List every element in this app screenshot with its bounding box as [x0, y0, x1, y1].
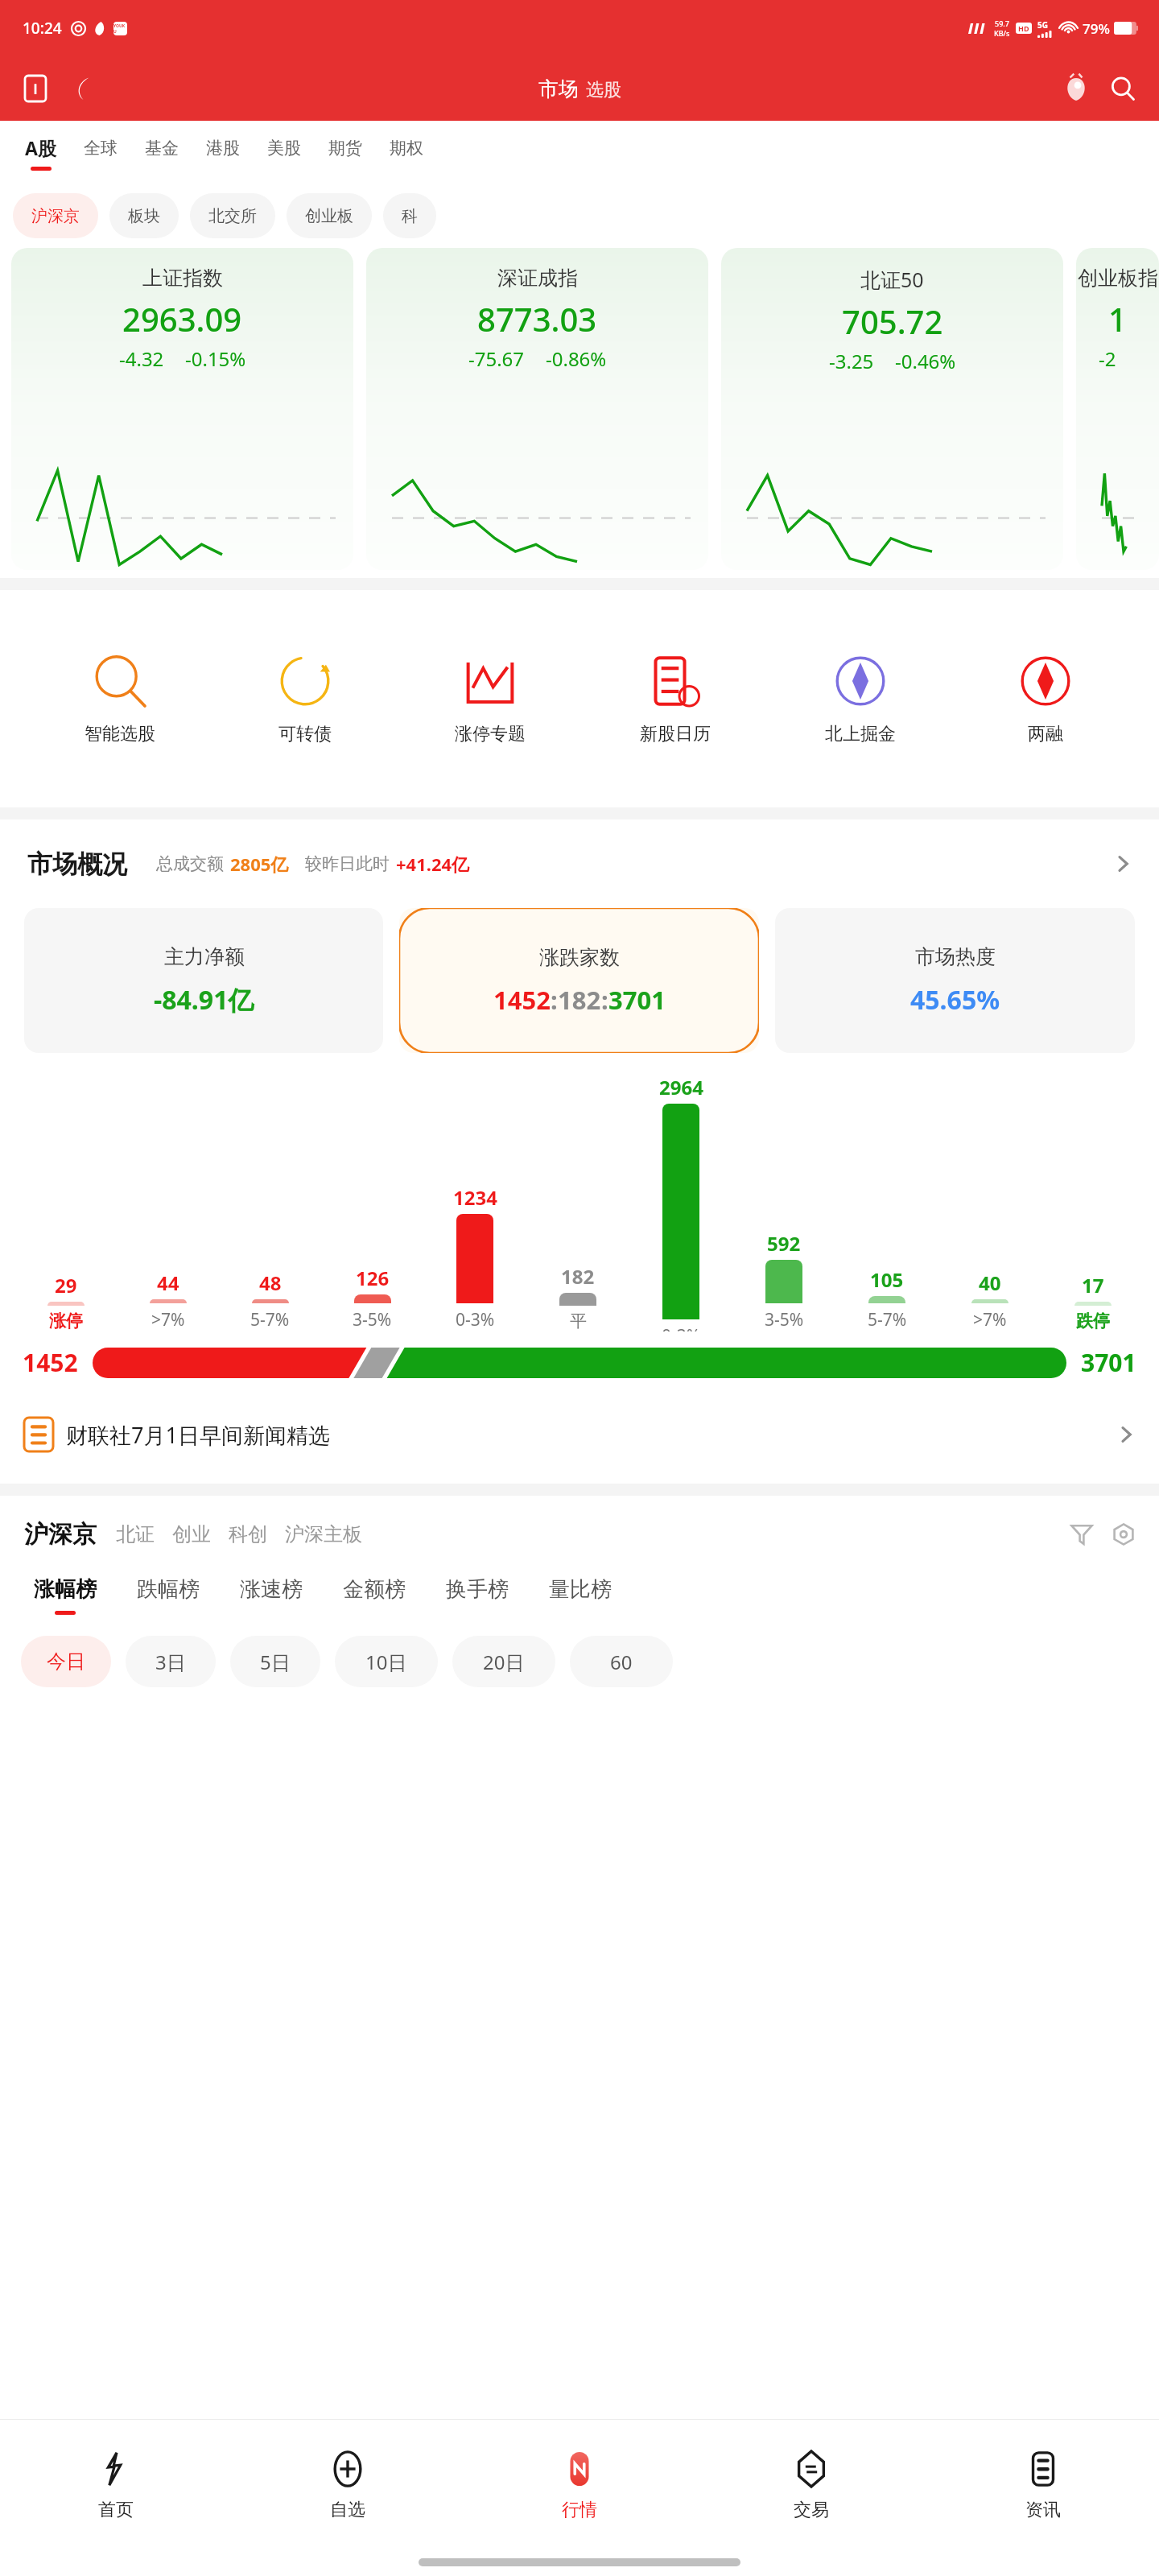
staticText: 平 [570, 1311, 587, 1331]
staticText: 涨速榜 [240, 1576, 303, 1603]
staticText: 交易 [794, 2499, 829, 2521]
staticText: 0-3% [662, 1324, 701, 1331]
staticText: 17 [1082, 1272, 1104, 1298]
button[interactable]: 科创 [229, 1522, 267, 1546]
button[interactable]: 科 [383, 193, 436, 238]
staticText: -75.67 [468, 345, 525, 372]
button[interactable]: 市场概况 [0, 819, 1159, 908]
staticText: 资讯 [1025, 2499, 1061, 2521]
staticText: 2964 [659, 1074, 703, 1100]
button[interactable]: 涨跌家数 [399, 908, 759, 1053]
button[interactable]: 涨停专题 [398, 652, 583, 745]
button[interactable]: 北交所 [190, 193, 275, 238]
button[interactable]: 跌幅榜 [126, 1576, 211, 1615]
button[interactable]: 创业板指 [1076, 248, 1159, 570]
button[interactable]: 资讯 [927, 2420, 1159, 2549]
button[interactable]: 沪深主板 [285, 1522, 362, 1546]
button[interactable]: 沪深京 [24, 1519, 97, 1550]
staticText: 行情 [562, 2499, 597, 2521]
staticText: 金额榜 [343, 1576, 406, 1603]
staticText: 20日 [483, 1649, 525, 1675]
button[interactable]: 基金 [131, 121, 192, 185]
staticText: >7% [973, 1308, 1007, 1331]
button[interactable]: 换手榜 [435, 1576, 520, 1615]
button[interactable]: 创业板 [287, 193, 372, 238]
button[interactable]: 沪深京 [13, 193, 98, 238]
staticText: -4.32 [119, 345, 164, 372]
staticText: 5-7% [250, 1308, 290, 1331]
staticText: 1452 [493, 983, 551, 1017]
button[interactable]: 20日 [452, 1636, 555, 1687]
button[interactable]: 10日 [335, 1636, 438, 1687]
staticText: 10日 [365, 1649, 407, 1675]
button[interactable]: 今日 [21, 1636, 111, 1687]
button[interactable]: 可转债 [212, 652, 398, 745]
button[interactable]: 板块 [109, 193, 179, 238]
staticText: 沪深京 [31, 206, 80, 226]
button[interactable]: 北证 [116, 1522, 155, 1546]
staticText: 上证指数 [142, 266, 223, 291]
button[interactable]: 美股 [254, 121, 315, 185]
staticText: 智能选股 [85, 723, 155, 745]
staticText: YOUKU [113, 23, 127, 35]
staticText: +41.24亿 [396, 852, 470, 876]
staticText: 跌幅榜 [137, 1576, 200, 1603]
button[interactable]: Filter [1061, 1513, 1103, 1555]
staticText: -0.86% [546, 345, 607, 372]
button[interactable]: 60 [570, 1636, 673, 1687]
staticText: 跌停 [1076, 1311, 1110, 1331]
button[interactable]: 上证指数 [11, 248, 353, 570]
button[interactable]: 期货 [315, 121, 376, 185]
button[interactable]: 涨速榜 [229, 1576, 314, 1615]
staticText: 5G [1037, 19, 1048, 31]
button[interactable]: Scan [14, 68, 56, 109]
button[interactable]: 港股 [192, 121, 254, 185]
staticText: 市场概况 [27, 848, 127, 880]
button[interactable]: 量比榜 [538, 1576, 623, 1615]
staticText: : [551, 983, 558, 1017]
button[interactable]: 5日 [230, 1636, 320, 1687]
button[interactable]: 北上掘金 [768, 652, 953, 745]
button[interactable]: 财联社7月1日早间新闻精选 [0, 1406, 1159, 1463]
button[interactable]: 深证成指 [366, 248, 708, 570]
button[interactable]: Search [1101, 67, 1145, 110]
staticText: 市场热度 [915, 944, 996, 969]
staticText: 美股 [267, 138, 301, 159]
staticText: 5-7% [868, 1308, 907, 1331]
button[interactable]: 两融 [953, 652, 1138, 745]
button[interactable]: 智能选股 [27, 652, 212, 745]
staticText: 今日 [47, 1649, 85, 1674]
staticText: 60 [610, 1649, 633, 1675]
button[interactable]: 期权 [376, 121, 437, 185]
button[interactable]: 自选 [232, 2420, 464, 2549]
staticText: 3701 [1081, 1346, 1136, 1379]
staticText: 48 [259, 1269, 282, 1296]
button[interactable]: Settings [1103, 1513, 1145, 1555]
button[interactable]: 新股日历 [583, 652, 768, 745]
button[interactable]: 市场热度 [775, 908, 1135, 1053]
button[interactable]: 金额榜 [332, 1576, 417, 1615]
staticText: 45.65% [910, 982, 1000, 1018]
staticText: 40 [979, 1269, 1001, 1296]
button[interactable]: 北证50 [721, 248, 1063, 570]
button[interactable]: Night mode [61, 68, 103, 109]
staticText: 深证成指 [497, 266, 578, 291]
staticText: 涨幅榜 [34, 1576, 97, 1603]
staticText: 44 [157, 1269, 179, 1296]
button[interactable]: 交易 [695, 2420, 927, 2549]
button[interactable]: Assistant [1054, 67, 1098, 110]
staticText: 705.72 [842, 299, 943, 343]
staticText: 主力净额 [164, 944, 245, 969]
button[interactable]: A股 [11, 121, 70, 185]
button[interactable]: 创业 [172, 1522, 211, 1546]
button[interactable]: 行情 [464, 2420, 695, 2549]
staticText: -84.91亿 [154, 982, 254, 1018]
staticText: 选股 [586, 79, 621, 101]
button[interactable]: 首页 [0, 2420, 232, 2549]
staticText: 北交所 [208, 206, 257, 226]
staticText: 182 [561, 1263, 595, 1290]
button[interactable]: 涨幅榜 [23, 1576, 108, 1615]
button[interactable]: 3日 [126, 1636, 216, 1687]
button[interactable]: 主力净额 [24, 908, 383, 1053]
button[interactable]: 全球 [70, 121, 131, 185]
